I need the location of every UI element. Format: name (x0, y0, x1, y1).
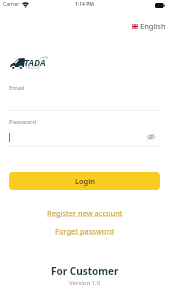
staticText: English (140, 21, 166, 31)
staticText: Login (75, 176, 95, 186)
staticText: Version 1.0 (69, 279, 101, 287)
staticText: Email (9, 84, 25, 92)
button[interactable]: Show password (145, 131, 157, 143)
button[interactable]: Forget password (55, 226, 114, 236)
staticText: Carrier (3, 1, 20, 8)
staticText: 1:14 PM (75, 1, 94, 8)
button[interactable]: English (132, 21, 166, 31)
button[interactable]: Register new account (47, 208, 123, 218)
staticText: TADA (24, 56, 46, 68)
button[interactable]: Login (9, 172, 160, 190)
staticText: For Customer (51, 264, 119, 278)
staticText: Password (9, 118, 37, 126)
staticText: T R U C K (25, 65, 40, 70)
